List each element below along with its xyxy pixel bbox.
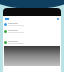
button[interactable]: [4, 28, 60, 35]
button[interactable]: [4, 21, 60, 28]
button[interactable]: [4, 39, 60, 46]
button[interactable]: [3, 16, 61, 21]
